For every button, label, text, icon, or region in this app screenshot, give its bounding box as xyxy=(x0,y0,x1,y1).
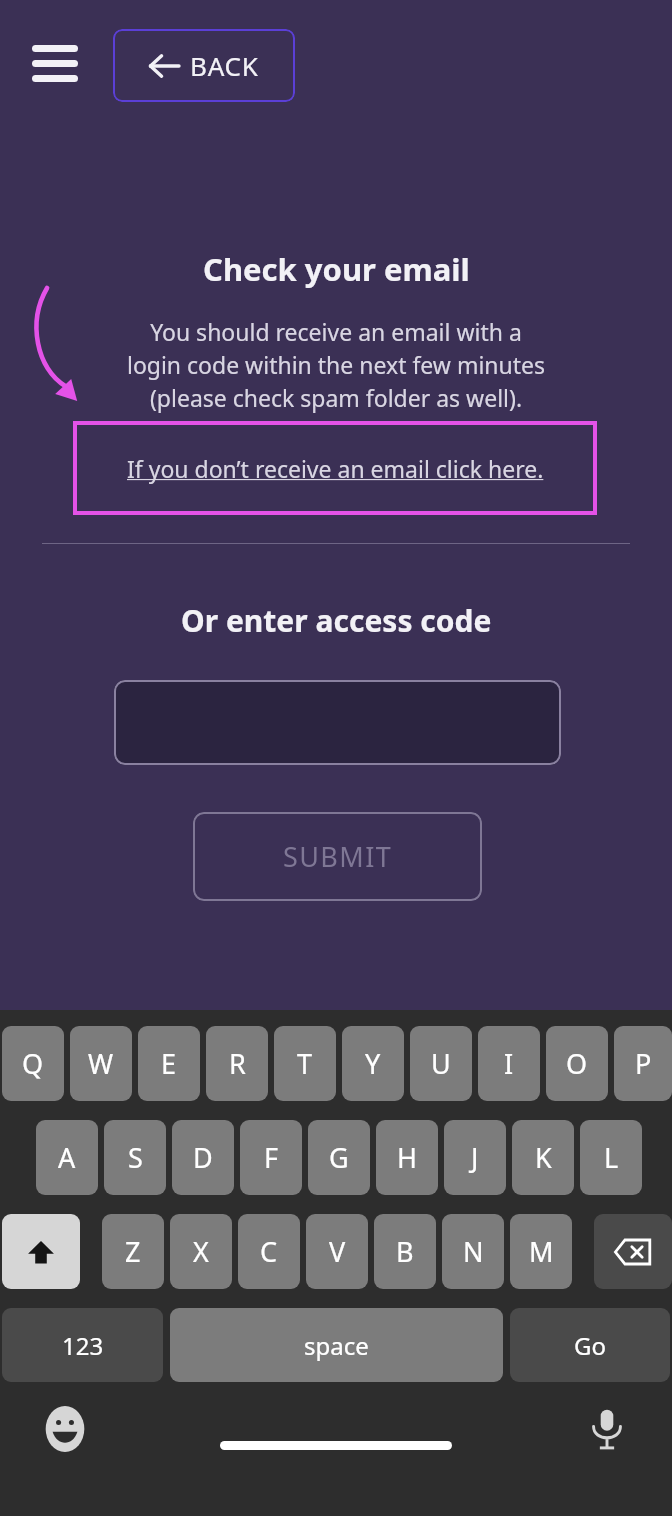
button[interactable]: G xyxy=(308,1120,370,1195)
button[interactable]: E xyxy=(138,1026,200,1101)
staticText: G xyxy=(329,1139,349,1176)
button[interactable]: H xyxy=(376,1120,438,1195)
button[interactable]: space xyxy=(170,1308,503,1382)
button[interactable]: L xyxy=(580,1120,642,1195)
staticText: B xyxy=(396,1233,414,1270)
staticText: Y xyxy=(365,1045,381,1082)
button[interactable]: F xyxy=(240,1120,302,1195)
staticText: P xyxy=(635,1045,652,1082)
staticText: S xyxy=(128,1139,143,1176)
button[interactable]: X xyxy=(170,1214,232,1289)
staticText: space xyxy=(304,1329,369,1362)
staticText: Check your email xyxy=(203,248,470,290)
staticText: F xyxy=(264,1139,279,1176)
button[interactable]: K xyxy=(512,1120,574,1195)
button[interactable]: Voice input xyxy=(572,1394,642,1464)
button[interactable]: M xyxy=(510,1214,572,1289)
button[interactable]: Backspace xyxy=(594,1214,672,1289)
button[interactable]: P xyxy=(614,1026,672,1101)
button[interactable]: Y xyxy=(342,1026,404,1101)
button[interactable]: B xyxy=(374,1214,436,1289)
staticText: K xyxy=(535,1139,552,1176)
staticText: C xyxy=(260,1233,278,1270)
staticText: V xyxy=(329,1233,346,1270)
button[interactable]: A xyxy=(36,1120,98,1195)
staticText: J xyxy=(471,1139,479,1176)
staticText: SUBMIT xyxy=(283,838,393,875)
button[interactable]: N xyxy=(442,1214,504,1289)
button[interactable]: Q xyxy=(2,1026,64,1101)
button[interactable]: T xyxy=(274,1026,336,1101)
button[interactable]: S xyxy=(104,1120,166,1195)
button[interactable]: C xyxy=(238,1214,300,1289)
staticText: BACK xyxy=(190,48,259,83)
button[interactable]: Menu xyxy=(22,36,88,92)
button[interactable]: Z xyxy=(102,1214,164,1289)
staticText: D xyxy=(193,1139,213,1176)
staticText: U xyxy=(431,1045,451,1082)
button[interactable]: Go xyxy=(510,1308,670,1382)
staticText: 123 xyxy=(62,1329,104,1362)
staticText: A xyxy=(58,1139,76,1176)
staticText: X xyxy=(193,1233,209,1270)
button[interactable]: O xyxy=(546,1026,608,1101)
button[interactable]: BACK xyxy=(113,29,295,102)
staticText: If you don’t receive an email click here… xyxy=(127,453,544,484)
button[interactable]: W xyxy=(70,1026,132,1101)
staticText: T xyxy=(297,1045,313,1082)
staticText: N xyxy=(463,1233,484,1270)
button[interactable]: If you don’t receive an email click here… xyxy=(73,421,597,515)
staticText: You should receive an email with a login… xyxy=(80,316,592,414)
staticText: I xyxy=(504,1045,514,1082)
staticText: O xyxy=(566,1045,588,1082)
button[interactable]: R xyxy=(206,1026,268,1101)
staticText: M xyxy=(529,1233,554,1270)
staticText: L xyxy=(604,1139,619,1176)
staticText: Q xyxy=(22,1045,44,1082)
button[interactable]: Shift xyxy=(2,1214,80,1289)
button[interactable]: V xyxy=(306,1214,368,1289)
button[interactable]: U xyxy=(410,1026,472,1101)
button[interactable]: J xyxy=(444,1120,506,1195)
staticText: Or enter access code xyxy=(181,600,492,641)
button[interactable]: Access code input xyxy=(114,680,561,765)
staticText: Go xyxy=(574,1329,606,1362)
staticText: R xyxy=(229,1045,246,1082)
staticText: Z xyxy=(125,1233,141,1270)
button[interactable]: D xyxy=(172,1120,234,1195)
button[interactable]: 123 xyxy=(2,1308,163,1382)
staticText: H xyxy=(397,1139,418,1176)
button[interactable]: SUBMIT xyxy=(193,812,482,901)
button[interactable]: Emoji xyxy=(30,1394,100,1464)
staticText: W xyxy=(88,1045,114,1082)
button[interactable]: I xyxy=(478,1026,540,1101)
staticText: E xyxy=(161,1045,177,1082)
